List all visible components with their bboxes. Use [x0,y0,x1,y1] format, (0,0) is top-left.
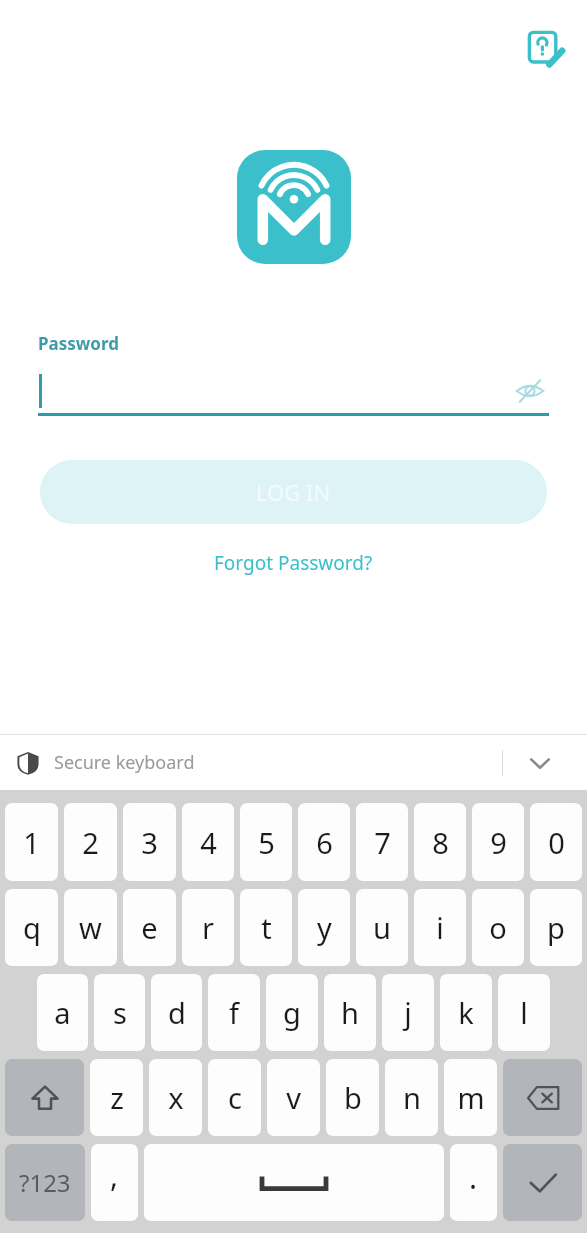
staticText: p [547,908,565,947]
staticText: e [141,908,158,947]
staticText: 5 [258,823,275,862]
button[interactable]: n [385,1059,438,1136]
button[interactable]: Enter [503,1144,582,1221]
staticText: d [168,993,186,1032]
button[interactable]: m [444,1059,497,1136]
button[interactable]: Space [144,1144,444,1221]
staticText: g [283,993,301,1032]
staticText: ?123 [19,1166,71,1199]
staticText: n [403,1078,421,1117]
staticText: l [520,993,528,1032]
staticText: 3 [141,823,158,862]
button[interactable]: Help [521,24,573,76]
button[interactable]: q [5,889,58,966]
button[interactable]: 6 [298,803,350,881]
staticText: , [110,1155,119,1196]
staticText: t [261,908,272,947]
button[interactable]: j [382,974,434,1051]
button[interactable]: w [64,889,117,966]
button[interactable]: Show password [511,372,549,410]
staticText: 4 [200,823,217,862]
button[interactable]: y [298,889,350,966]
button[interactable]: s [94,974,145,1051]
staticText: f [229,993,239,1032]
button[interactable]: . [450,1144,497,1221]
staticText: LOG IN [256,477,331,507]
button[interactable]: c [208,1059,261,1136]
button[interactable]: Shift [5,1059,84,1136]
staticText: j [404,993,412,1032]
button[interactable]: h [324,974,376,1051]
button[interactable]: 9 [472,803,524,881]
button[interactable]: 4 [182,803,234,881]
staticText: 0 [548,823,565,862]
button[interactable]: l [498,974,550,1051]
button[interactable]: i [414,889,466,966]
staticText: r [202,908,214,947]
button[interactable]: ?123 [5,1144,85,1221]
staticText: a [54,993,71,1032]
button[interactable]: Forgot Password? [206,542,381,584]
staticText: o [489,908,507,947]
button[interactable]: 3 [123,803,176,881]
button[interactable]: Show password [38,369,549,413]
button[interactable]: k [440,974,492,1051]
button[interactable]: g [266,974,318,1051]
staticText: v [286,1078,301,1117]
button[interactable]: 1 [5,803,58,881]
button[interactable]: 8 [414,803,466,881]
button[interactable]: a [37,974,88,1051]
button[interactable]: d [151,974,202,1051]
button[interactable]: z [90,1059,143,1136]
button[interactable]: 5 [240,803,292,881]
button[interactable]: LOG IN [40,460,547,524]
button[interactable]: , [91,1144,138,1221]
staticText: k [458,993,474,1032]
staticText: 1 [23,823,40,862]
staticText: i [436,908,444,947]
button[interactable]: x [149,1059,202,1136]
staticText: h [341,993,359,1032]
button[interactable]: 0 [530,803,582,881]
button[interactable]: p [530,889,582,966]
staticText: y [317,908,332,947]
staticText: s [113,993,127,1032]
button[interactable]: u [356,889,408,966]
button[interactable]: t [240,889,292,966]
staticText: u [373,908,391,947]
staticText: z [110,1078,124,1117]
staticText: q [23,908,41,947]
button[interactable]: r [182,889,234,966]
staticText: . [469,1157,478,1198]
button[interactable]: o [472,889,524,966]
staticText: 6 [316,823,333,862]
button[interactable]: b [326,1059,379,1136]
staticText: b [344,1078,362,1117]
staticText: 7 [374,823,391,862]
button[interactable]: v [267,1059,320,1136]
staticText: c [228,1078,242,1117]
staticText: w [79,908,102,947]
button[interactable]: f [208,974,260,1051]
staticText: Password [38,332,119,355]
staticText: x [168,1078,184,1117]
button[interactable]: e [123,889,176,966]
staticText: m [457,1078,485,1117]
button[interactable]: 7 [356,803,408,881]
staticText: 8 [432,823,449,862]
staticText: 9 [490,823,507,862]
button[interactable]: Hide keyboard [503,735,577,790]
staticText: Forgot Password? [214,550,373,576]
staticText: 2 [82,823,99,862]
staticText: Secure keyboard [54,750,195,775]
button[interactable]: 2 [64,803,117,881]
button[interactable]: Backspace [503,1059,582,1136]
